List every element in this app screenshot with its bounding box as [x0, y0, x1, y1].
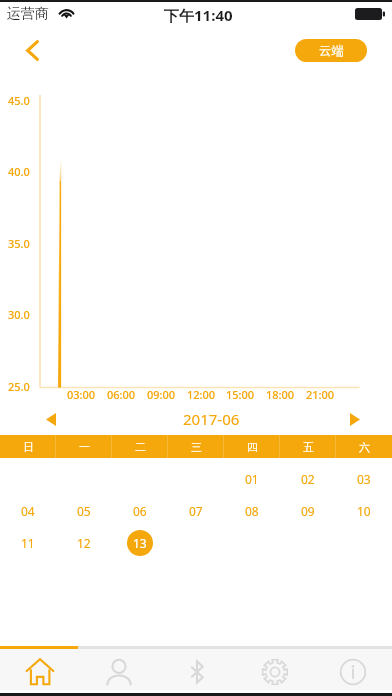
staticText: 11: [21, 535, 35, 551]
staticText: 12:00: [187, 387, 216, 402]
staticText: 四: [247, 440, 258, 454]
staticText: 05: [77, 503, 91, 519]
button[interactable]: 11: [15, 530, 41, 556]
button[interactable]: Next month: [340, 404, 370, 434]
button[interactable]: Bluetooth: [158, 649, 236, 690]
staticText: 云端: [319, 43, 344, 59]
staticText: 30.0: [8, 307, 30, 322]
staticText: 二: [135, 440, 146, 454]
button[interactable]: Home: [0, 649, 79, 690]
button[interactable]: 03: [351, 466, 377, 492]
button[interactable]: 13: [127, 530, 153, 556]
staticText: 40.0: [8, 164, 30, 179]
staticText: 15:00: [226, 387, 255, 402]
staticText: 03: [357, 471, 371, 487]
button[interactable]: Previous month: [36, 404, 66, 434]
staticText: 25.0: [8, 379, 30, 394]
staticText: 下午11:40: [164, 5, 233, 25]
staticText: 04: [21, 503, 35, 519]
staticText: 02: [301, 471, 315, 487]
button[interactable]: 08: [239, 498, 265, 524]
button[interactable]: Back: [10, 28, 54, 72]
button[interactable]: 云端: [295, 39, 367, 62]
staticText: 03:00: [67, 387, 96, 402]
staticText: 日: [23, 440, 34, 454]
button[interactable]: Settings: [236, 649, 314, 690]
button[interactable]: 06: [127, 498, 153, 524]
staticText: 10: [357, 503, 371, 519]
staticText: 07: [189, 503, 203, 519]
staticText: 12: [77, 535, 91, 551]
staticText: 45.0: [8, 93, 30, 108]
staticText: 06: [133, 503, 147, 519]
staticText: 06:00: [107, 387, 136, 402]
button[interactable]: 10: [351, 498, 377, 524]
staticText: 运营商: [7, 5, 49, 23]
staticText: 2017-06: [183, 409, 240, 429]
staticText: 18:00: [266, 387, 295, 402]
staticText: 09: [301, 503, 315, 519]
staticText: 01: [245, 471, 259, 487]
button[interactable]: 09: [295, 498, 321, 524]
button[interactable]: 05: [71, 498, 97, 524]
button[interactable]: 07: [183, 498, 209, 524]
button[interactable]: 04: [15, 498, 41, 524]
staticText: 35.0: [8, 236, 30, 251]
staticText: 21:00: [306, 387, 335, 402]
staticText: 一: [79, 440, 90, 454]
button[interactable]: Profile: [79, 649, 158, 690]
staticText: 六: [359, 440, 370, 454]
staticText: 五: [303, 440, 314, 454]
staticText: 09:00: [147, 387, 176, 402]
staticText: 13: [133, 535, 147, 551]
staticText: 08: [245, 503, 259, 519]
staticText: 三: [191, 440, 202, 454]
button[interactable]: 12: [71, 530, 97, 556]
button[interactable]: 01: [239, 466, 265, 492]
button[interactable]: Info: [314, 649, 392, 690]
button[interactable]: 02: [295, 466, 321, 492]
